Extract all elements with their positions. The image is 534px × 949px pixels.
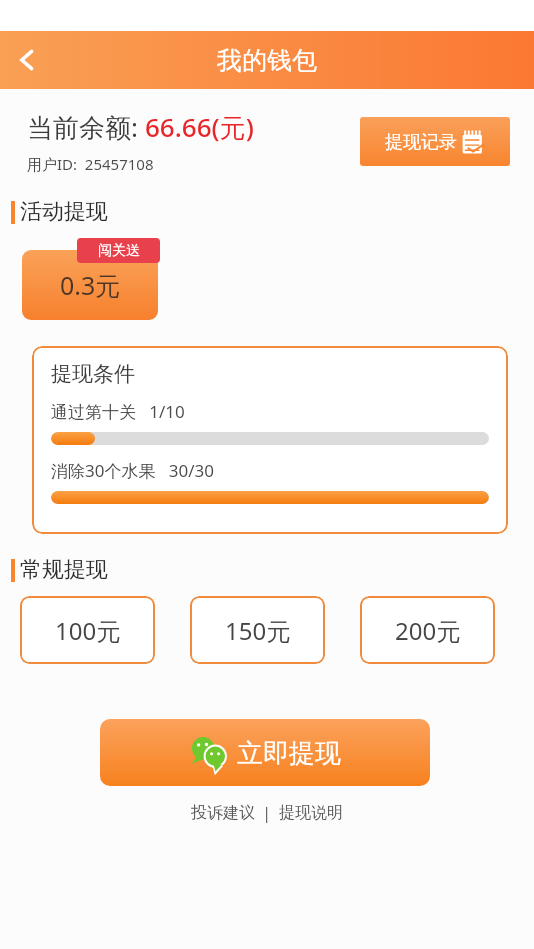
staticText: 提现条件: [51, 361, 135, 387]
staticText: 0.3元: [60, 268, 121, 302]
staticText: 150元: [225, 614, 291, 647]
button[interactable]: 提现记录: [360, 117, 510, 166]
staticText: 通过第十关 1/10: [51, 400, 185, 423]
staticText: 66.66(元): [145, 109, 254, 145]
staticText: 闯关送: [98, 242, 140, 260]
staticText: 提现记录: [385, 131, 457, 154]
button[interactable]: 100元: [20, 596, 155, 664]
staticText: 100元: [55, 614, 121, 647]
button[interactable]: 立即提现: [100, 719, 430, 786]
button[interactable]: 0.3元: [22, 250, 158, 320]
button[interactable]: 150元: [190, 596, 325, 664]
staticText: 用户ID: 25457108: [27, 154, 154, 174]
staticText: |: [258, 802, 276, 824]
button[interactable]: 提现说明: [276, 801, 346, 825]
button[interactable]: Back: [0, 33, 54, 87]
staticText: 常规提现: [20, 556, 108, 584]
button[interactable]: 投诉建议: [188, 801, 258, 825]
staticText: 立即提现: [237, 737, 341, 770]
staticText: 提现说明: [279, 803, 343, 823]
staticText: 投诉建议: [191, 803, 255, 823]
staticText: 消除30个水果 30/30: [51, 459, 214, 482]
staticText: 我的钱包: [217, 45, 317, 76]
staticText: 活动提现: [20, 198, 108, 226]
staticText: 当前余额:: [27, 109, 145, 145]
staticText: 200元: [395, 614, 461, 647]
button[interactable]: 200元: [360, 596, 495, 664]
